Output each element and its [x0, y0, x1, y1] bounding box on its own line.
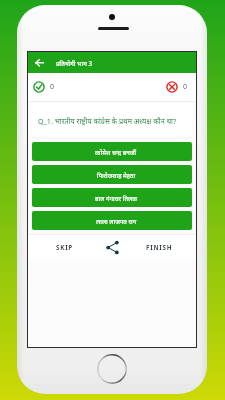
button[interactable]: फिरोजशाह मेहता	[32, 165, 192, 184]
button[interactable]: Share	[89, 235, 136, 260]
button[interactable]: FINISH	[136, 235, 183, 260]
staticText: व्योमेश चन्द्र बनर्जी	[95, 148, 137, 156]
staticText: Q_1. भारतीय राष्ट्रीय कांग्रेस के प्रथम …	[38, 116, 177, 126]
staticText: प्रतियोगी भाग 3	[56, 59, 92, 67]
button[interactable]: बाल गंगाधर तिलक	[32, 188, 192, 207]
staticText: SKIP	[56, 243, 74, 252]
button[interactable]: SKIP	[41, 235, 89, 260]
button[interactable]: लाला लाजपत राय	[32, 211, 192, 230]
staticText: फिरोजशाह मेहता	[97, 171, 136, 179]
button[interactable]: व्योमेश चन्द्र बनर्जी	[32, 142, 192, 161]
staticText: लाला लाजपत राय	[96, 217, 137, 225]
staticText: 0	[50, 82, 55, 92]
staticText: FINISH	[146, 243, 173, 252]
button[interactable]: Back	[28, 52, 51, 73]
staticText: 0	[183, 82, 188, 92]
staticText: बाल गंगाधर तिलक	[95, 194, 137, 202]
